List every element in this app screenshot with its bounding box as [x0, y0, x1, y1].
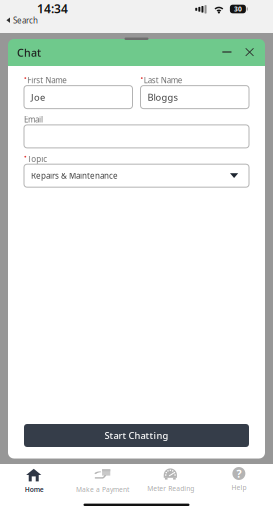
staticText: 30: [234, 5, 242, 13]
button[interactable]: Minimise: [220, 39, 233, 66]
staticText: Last Name: [144, 75, 183, 85]
staticText: Search: [13, 15, 38, 26]
staticText: Meter Reading: [147, 484, 194, 493]
staticText: First Name: [27, 75, 67, 85]
staticText: Start Chatting: [104, 429, 168, 442]
staticText: ?: [236, 466, 241, 481]
staticText: Home: [25, 485, 44, 494]
staticText: Joe: [31, 91, 45, 103]
button[interactable]: Meter Reading: [136, 464, 205, 512]
staticText: Chat: [17, 45, 41, 60]
staticText: Email: [24, 114, 43, 125]
staticText: 14:34: [37, 0, 68, 16]
staticText: Make a Payment: [76, 485, 129, 494]
button[interactable]: Repairs & Maintenance: [24, 164, 249, 187]
button[interactable]: Home: [0, 464, 68, 512]
staticText: Topic: [27, 153, 47, 164]
button[interactable]: Make a Payment: [68, 464, 136, 512]
staticText: Repairs & Maintenance: [31, 170, 118, 181]
button[interactable]: Start Chatting: [24, 424, 249, 447]
button[interactable]: Close: [245, 41, 254, 63]
staticText: Bloggs: [147, 91, 177, 103]
button[interactable]: ?: [205, 464, 273, 512]
staticText: Help: [231, 483, 246, 492]
